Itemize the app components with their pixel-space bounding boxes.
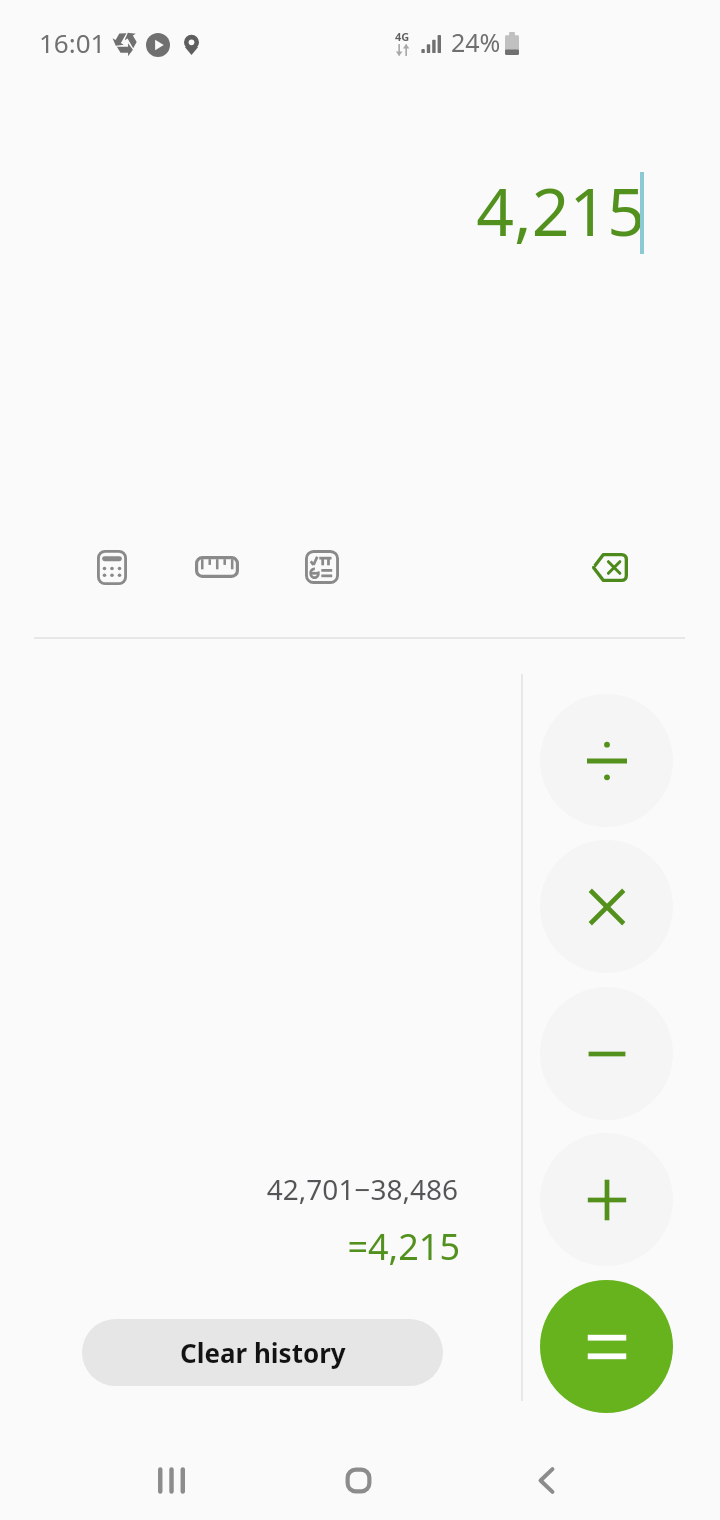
staticText: 16:01 bbox=[39, 25, 106, 60]
staticText: 4G bbox=[395, 29, 410, 44]
staticText: 4,215 bbox=[0, 165, 645, 255]
staticText: 24% bbox=[451, 25, 501, 59]
button[interactable]: Recents bbox=[111, 1440, 231, 1520]
button[interactable]: Backspace bbox=[577, 535, 641, 599]
button[interactable]: Divide bbox=[540, 694, 673, 827]
button[interactable]: Equals bbox=[540, 1280, 673, 1413]
button[interactable]: Calculator bbox=[80, 535, 144, 599]
staticText: =4,215 bbox=[0, 1222, 460, 1271]
button[interactable]: Multiply bbox=[540, 840, 673, 973]
button[interactable]: Subtract bbox=[540, 987, 673, 1120]
staticText: Clear history bbox=[180, 1335, 346, 1370]
button[interactable]: Scientific calculator bbox=[290, 535, 354, 599]
button[interactable]: Clear history bbox=[82, 1319, 443, 1386]
button[interactable]: 4,215 bbox=[0, 120, 720, 300]
button[interactable]: Home bbox=[298, 1440, 418, 1520]
button[interactable]: Add bbox=[540, 1133, 673, 1266]
button[interactable]: Unit converter bbox=[185, 535, 249, 599]
button[interactable]: Back bbox=[486, 1440, 606, 1520]
button[interactable]: 42,701−38,486 bbox=[0, 1170, 458, 1208]
staticText: 42,701−38,486 bbox=[0, 1170, 458, 1208]
